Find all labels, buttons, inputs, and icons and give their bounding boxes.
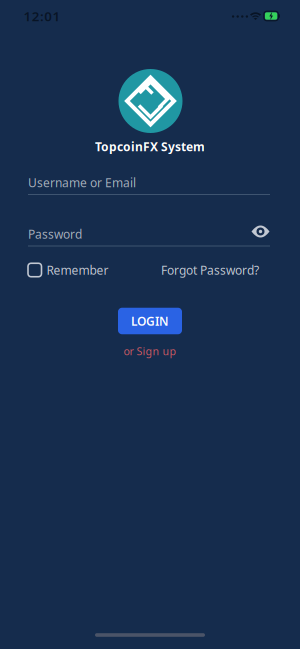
staticText: Remember xyxy=(46,262,108,278)
button[interactable]: LOGIN xyxy=(118,308,182,334)
staticText: Username or Email xyxy=(28,174,136,190)
staticText: LOGIN xyxy=(131,313,169,329)
button[interactable]: Username or Email xyxy=(28,176,270,195)
staticText: or Sign up xyxy=(123,344,176,358)
staticText: Password xyxy=(28,226,82,242)
button[interactable]: Remember xyxy=(28,262,138,278)
staticText: TopcoinFX System xyxy=(95,138,205,154)
button[interactable]: Forgot Password? xyxy=(159,263,259,277)
staticText: 12:01 xyxy=(23,7,61,25)
staticText: Forgot Password? xyxy=(161,262,259,278)
button[interactable]: Show password xyxy=(251,224,270,238)
button[interactable]: or Sign up xyxy=(123,344,176,358)
button[interactable]: Password xyxy=(28,227,270,246)
